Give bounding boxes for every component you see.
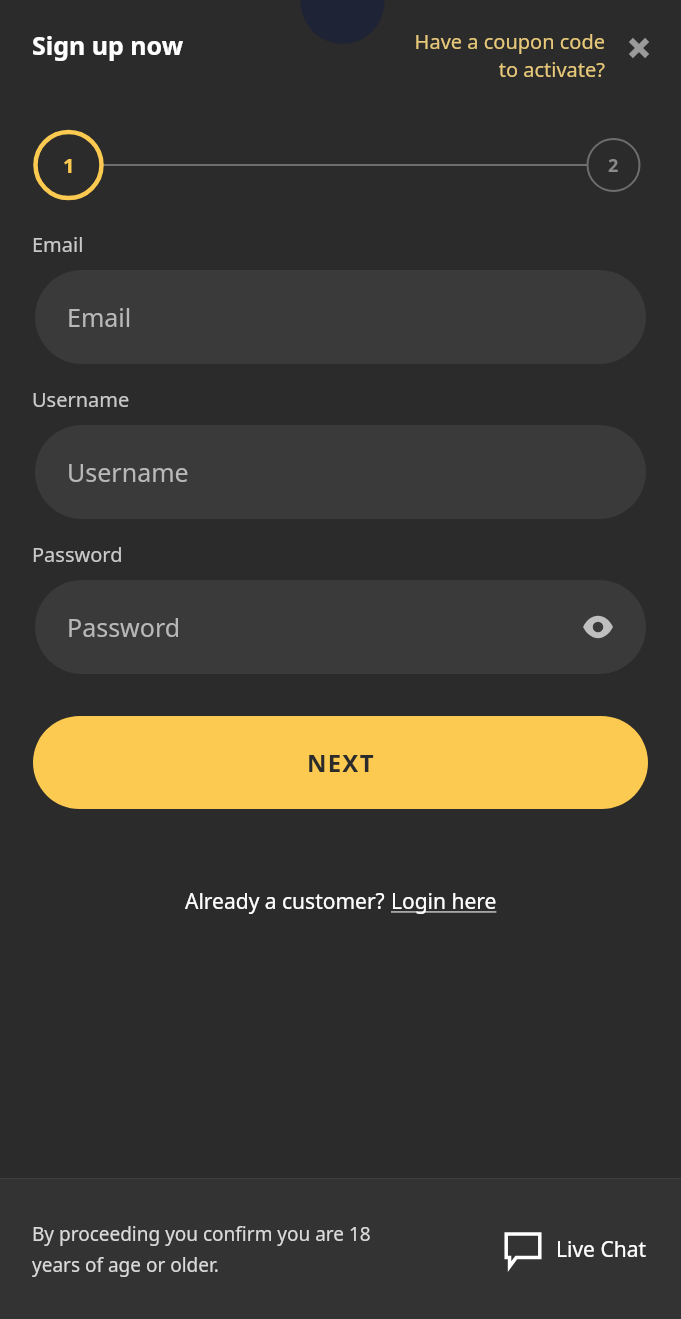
staticText: NEXT — [307, 746, 375, 779]
button[interactable]: Password — [35, 580, 646, 674]
staticText: Have a coupon code to activate? — [409, 28, 605, 83]
staticText: Sign up now — [32, 28, 184, 62]
staticText: Email — [67, 300, 132, 334]
button[interactable]: Email — [35, 270, 646, 364]
button[interactable]: Have a coupon code to activate? — [409, 28, 609, 83]
staticText: Already a customer? — [185, 887, 391, 916]
button[interactable]: Login here — [391, 887, 497, 916]
staticText: Email — [32, 231, 84, 258]
button[interactable]: Username — [35, 425, 646, 519]
staticText: Password — [32, 541, 123, 568]
staticText: Live Chat — [556, 1235, 647, 1264]
button[interactable]: Show password — [578, 607, 618, 647]
staticText: 2 — [608, 153, 619, 178]
staticText: Username — [67, 455, 189, 489]
button[interactable]: NEXT — [33, 716, 648, 809]
button[interactable]: Close — [619, 28, 659, 68]
staticText: Username — [32, 386, 130, 413]
staticText: Login here — [391, 887, 497, 916]
staticText: 1 — [63, 152, 75, 179]
button[interactable]: Live Chat — [498, 1224, 651, 1274]
staticText: By proceeding you confirm you are 18 yea… — [32, 1221, 412, 1277]
staticText: Password — [67, 610, 181, 644]
